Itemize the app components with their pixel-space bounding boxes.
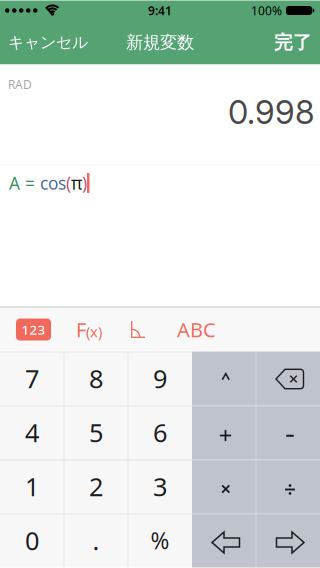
staticText: 1: [25, 470, 39, 503]
staticText: RAD: [8, 76, 32, 92]
staticText: 6: [153, 416, 167, 449]
staticText: 8: [89, 362, 103, 395]
button[interactable]: divide: [256, 459, 320, 513]
staticText: 完了: [274, 31, 312, 54]
button[interactable]: 9: [128, 351, 192, 405]
button[interactable]: cursor right: [256, 513, 320, 567]
button[interactable]: Trigonometry keys: [131, 321, 145, 338]
staticText: 123: [21, 321, 45, 338]
staticText: =: [20, 171, 40, 194]
staticText: F(x): [76, 316, 102, 343]
staticText: 5: [89, 416, 103, 449]
staticText: 0.998: [228, 92, 315, 132]
button[interactable]: F(x): [76, 316, 102, 343]
staticText: 9: [153, 362, 167, 395]
staticText: (: [66, 171, 71, 194]
button[interactable]: 8: [64, 351, 128, 405]
staticText: π: [71, 171, 82, 194]
button[interactable]: 6: [128, 405, 192, 459]
button[interactable]: 2: [64, 459, 128, 513]
button[interactable]: 5: [64, 405, 128, 459]
button[interactable]: .: [64, 513, 128, 567]
button[interactable]: 7: [0, 351, 64, 405]
button[interactable]: 123: [16, 318, 51, 340]
staticText: 0: [25, 524, 39, 557]
staticText: 4: [25, 416, 39, 449]
button[interactable]: multiply: [192, 459, 256, 513]
staticText: ): [82, 171, 87, 194]
staticText: ABC: [177, 316, 216, 343]
staticText: A: [9, 171, 20, 194]
button[interactable]: キャンセル: [8, 33, 88, 52]
staticText: 9:41: [148, 2, 172, 18]
button[interactable]: 3: [128, 459, 192, 513]
staticText: .: [92, 524, 99, 557]
button[interactable]: power: [192, 351, 256, 405]
staticText: キャンセル: [8, 33, 88, 52]
button[interactable]: 完了: [274, 31, 312, 54]
button[interactable]: delete: [256, 351, 320, 405]
button[interactable]: plus: [192, 405, 256, 459]
staticText: 2: [89, 470, 103, 503]
button[interactable]: 4: [0, 405, 64, 459]
staticText: 100%: [251, 2, 282, 18]
button[interactable]: ABC: [177, 316, 216, 343]
staticText: 3: [153, 470, 167, 503]
button[interactable]: %: [128, 513, 192, 567]
staticText: 新規変数: [126, 32, 194, 53]
button[interactable]: cursor left: [192, 513, 256, 567]
staticText: %: [150, 525, 169, 555]
staticText: cos: [40, 171, 66, 194]
button[interactable]: 0: [0, 513, 64, 567]
button[interactable]: minus: [256, 405, 320, 459]
button[interactable]: 1: [0, 459, 64, 513]
staticText: 7: [25, 362, 39, 395]
